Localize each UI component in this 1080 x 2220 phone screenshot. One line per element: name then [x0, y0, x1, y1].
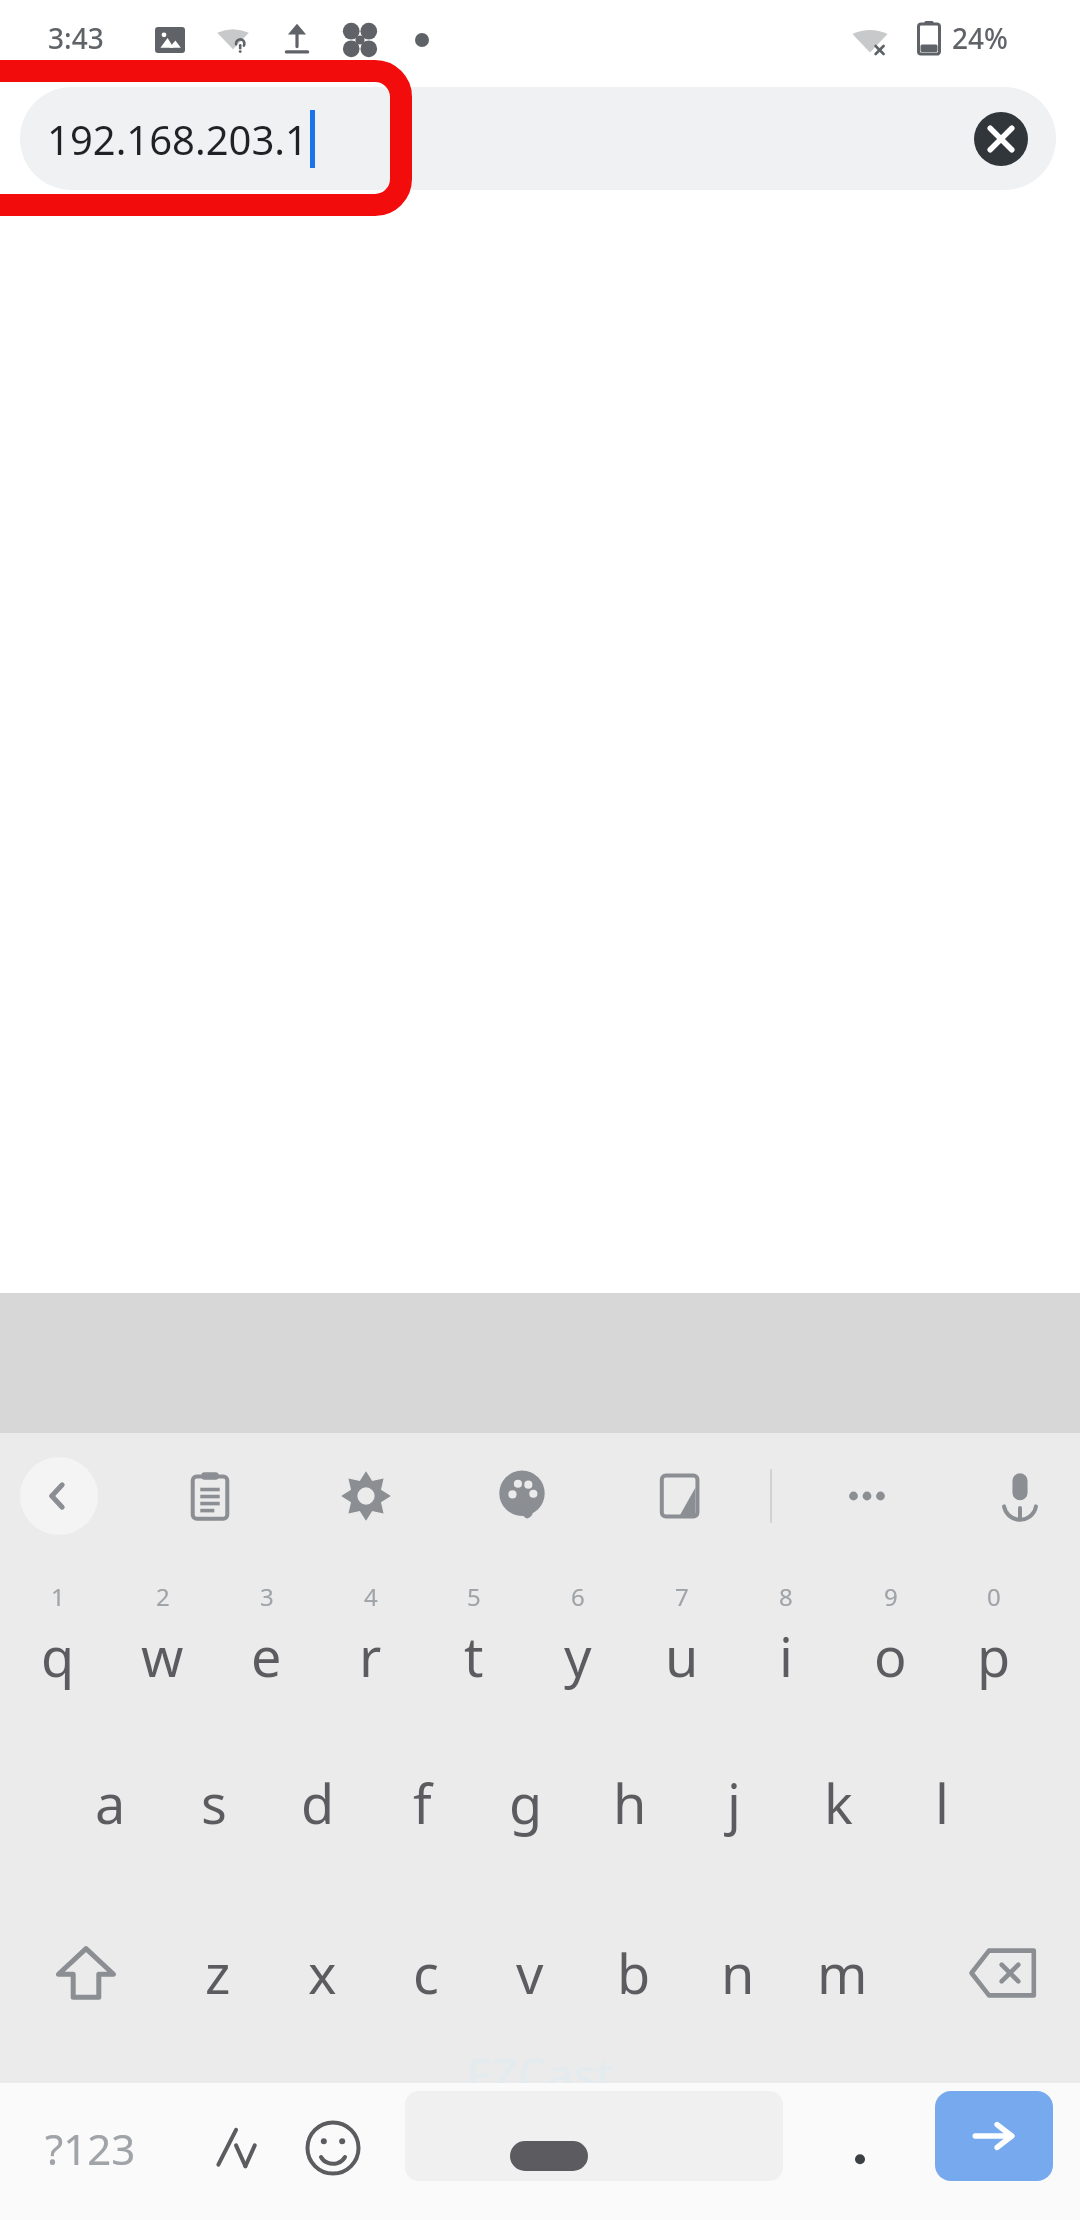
staticText: p — [977, 1619, 1011, 1693]
button[interactable]: Shift — [18, 1903, 153, 2043]
staticText: z — [205, 1936, 231, 2010]
button[interactable]: d — [266, 1733, 370, 1873]
staticText: a — [95, 1766, 126, 1840]
button[interactable]: 8 — [734, 1561, 838, 1711]
button[interactable]: Space — [405, 2091, 783, 2181]
staticText: m — [817, 1936, 868, 2010]
staticText: 5 — [467, 1580, 481, 1613]
staticText: 192.168.203.1 — [47, 112, 308, 166]
button[interactable]: 2 — [110, 1561, 214, 1711]
staticText: 1 — [51, 1580, 65, 1613]
button[interactable]: a — [58, 1733, 162, 1873]
staticText: o — [874, 1619, 907, 1693]
staticText: u — [665, 1619, 699, 1693]
staticText: s — [201, 1766, 227, 1840]
button[interactable]: Stickers — [633, 1451, 723, 1541]
staticText: 24% — [952, 19, 1008, 57]
button[interactable]: Back — [20, 1457, 98, 1535]
button[interactable]: g — [474, 1733, 578, 1873]
button[interactable]: Emoji — [278, 2093, 388, 2203]
staticText: n — [721, 1936, 755, 2010]
staticText: j — [727, 1766, 741, 1840]
button[interactable]: n — [686, 1903, 790, 2043]
staticText: l — [935, 1766, 949, 1840]
staticText: d — [301, 1766, 335, 1840]
button[interactable]: Change language — [180, 2093, 290, 2203]
staticText: ?123 — [45, 2120, 136, 2177]
button[interactable]: h — [578, 1733, 682, 1873]
staticText: 3 — [260, 1580, 274, 1613]
button[interactable]: v — [478, 1903, 582, 2043]
staticText: f — [413, 1766, 432, 1840]
staticText: t — [464, 1619, 484, 1693]
button[interactable]: 0 — [942, 1561, 1046, 1711]
staticText: k — [824, 1766, 853, 1840]
button[interactable]: Theme — [477, 1451, 567, 1541]
staticText: w — [141, 1619, 184, 1693]
button[interactable]: 5 — [422, 1561, 526, 1711]
button[interactable]: 1 — [6, 1561, 110, 1711]
button[interactable]: 3 — [214, 1561, 318, 1711]
staticText: g — [509, 1766, 543, 1840]
button[interactable]: ?123 — [10, 2093, 170, 2203]
staticText: x — [308, 1936, 337, 2010]
staticText: EZCast — [0, 2043, 1080, 2106]
staticText: 3:43 — [48, 19, 104, 57]
button[interactable]: b — [582, 1903, 686, 2043]
button[interactable] — [805, 2093, 915, 2203]
button[interactable]: f — [370, 1733, 474, 1873]
staticText: r — [359, 1619, 382, 1693]
staticText: 8 — [779, 1580, 793, 1613]
staticText: v — [516, 1936, 544, 2010]
button[interactable]: l — [890, 1733, 994, 1873]
staticText: 9 — [884, 1580, 898, 1613]
button[interactable]: k — [786, 1733, 890, 1873]
staticText: 2 — [156, 1580, 170, 1613]
button[interactable]: j — [682, 1733, 786, 1873]
staticText: h — [613, 1766, 647, 1840]
staticText: c — [413, 1936, 439, 2010]
button[interactable]: z — [166, 1903, 270, 2043]
button[interactable]: Backspace — [935, 1903, 1070, 2043]
button[interactable]: Clipboard — [165, 1451, 255, 1541]
button[interactable]: m — [790, 1903, 894, 2043]
button[interactable]: 192.168.203.1 — [20, 87, 1056, 190]
button[interactable]: s — [162, 1733, 266, 1873]
button[interactable]: Settings — [321, 1451, 411, 1541]
button[interactable]: Voice input — [975, 1451, 1065, 1541]
button[interactable]: 9 — [838, 1561, 942, 1711]
staticText: y — [564, 1619, 592, 1693]
staticText: 6 — [571, 1580, 585, 1613]
button[interactable]: Clear text — [974, 112, 1028, 166]
staticText: b — [617, 1936, 651, 2010]
staticText: e — [251, 1619, 282, 1693]
staticText: 7 — [675, 1580, 689, 1613]
button[interactable]: 7 — [630, 1561, 734, 1711]
button[interactable]: 6 — [526, 1561, 630, 1711]
button[interactable]: Enter — [935, 2091, 1053, 2181]
staticText: 0 — [987, 1580, 1001, 1613]
staticText: i — [779, 1619, 793, 1693]
staticText: 4 — [364, 1580, 378, 1613]
button[interactable]: 4 — [318, 1561, 422, 1711]
button[interactable]: More — [822, 1451, 912, 1541]
staticText: q — [41, 1619, 75, 1693]
button[interactable]: c — [374, 1903, 478, 2043]
button[interactable]: x — [270, 1903, 374, 2043]
